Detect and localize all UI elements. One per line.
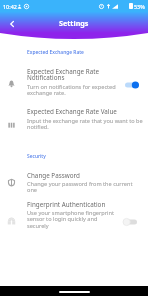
staticText: Security [27,153,46,160]
button[interactable]: Change Password [0,170,148,196]
staticText: 10:42 [3,3,17,10]
button[interactable]: Switch off [122,217,138,227]
button[interactable]: Expected Exchange Rate Notifications [0,64,148,100]
staticText: Expected Exchange Rate [27,49,84,56]
staticText: Change your password from the current on… [27,180,133,194]
button[interactable]: Back [5,17,19,31]
button[interactable]: Fingerprint Authentication [0,199,148,233]
staticText: Expected Exchange Rate Value [27,107,117,116]
staticText: Turn on notifications for expected excha… [27,83,116,97]
staticText: Input the exchange rate that you want to… [27,117,143,131]
staticText: Fingerprint Authentication [27,200,106,209]
staticText: Change Password [27,171,80,180]
button[interactable]: Switch on [124,80,140,90]
staticText: Expected Exchange Rate Notifications [27,67,99,82]
button[interactable]: Expected Exchange Rate Value [0,106,148,134]
staticText: Use your smartphone fingerprint sensor t… [27,209,114,230]
staticText: Settings [59,18,89,28]
staticText: 53% [134,3,145,10]
